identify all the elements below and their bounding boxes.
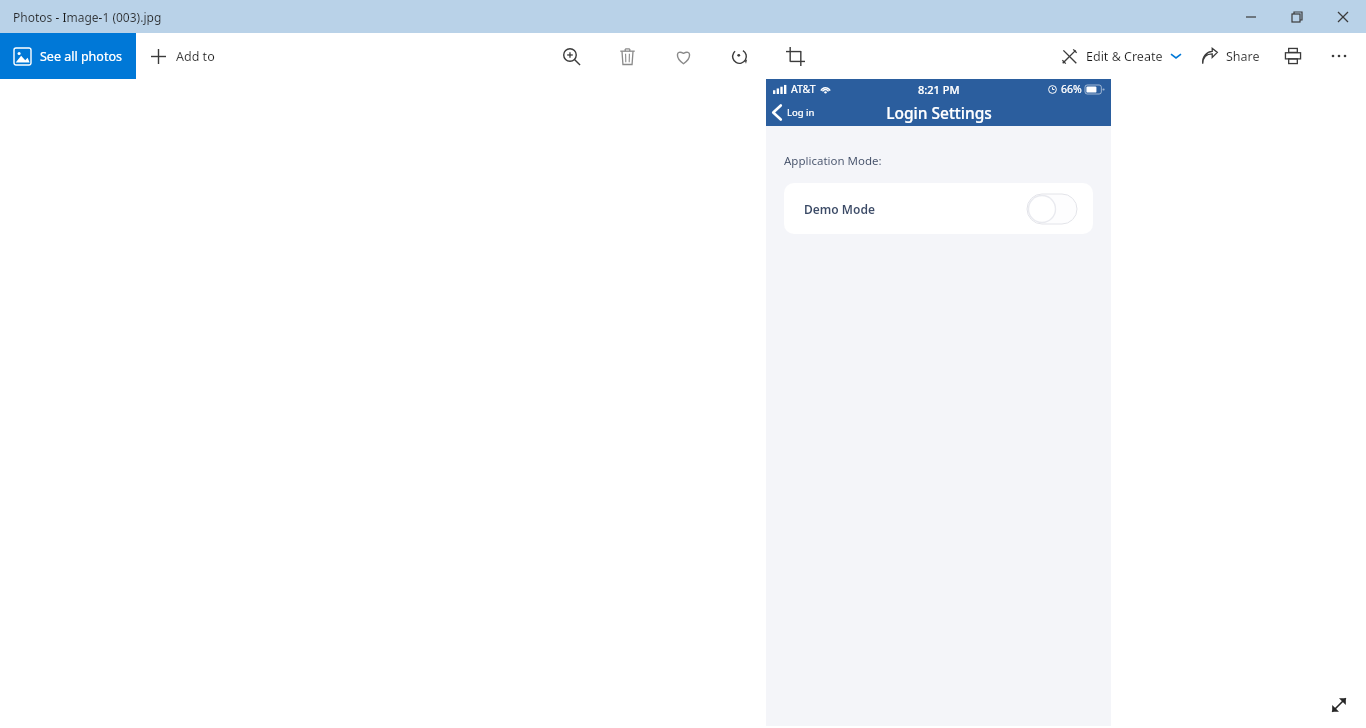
button[interactable]: Demo Mode	[784, 183, 1093, 234]
button[interactable]: Add to	[136, 33, 229, 79]
staticText: Log in	[787, 106, 815, 119]
staticText: 66%	[1061, 82, 1082, 96]
staticText: Login Settings	[886, 102, 992, 123]
button[interactable]: Zoom	[551, 36, 591, 76]
button[interactable]: Share	[1191, 33, 1270, 79]
button[interactable]: Demo Mode toggle, off	[1027, 194, 1077, 224]
button[interactable]: Edit & Create	[1051, 33, 1191, 79]
staticText: Edit & Create	[1086, 48, 1163, 65]
button[interactable]: Delete	[607, 36, 647, 76]
staticText: Add to	[176, 48, 215, 65]
staticText: See all photos	[40, 48, 122, 65]
button[interactable]: Close	[1320, 0, 1366, 33]
staticText: Share	[1226, 48, 1260, 65]
button[interactable]: Print	[1270, 33, 1316, 79]
staticText: Demo Mode	[804, 201, 875, 217]
staticText: 8:21 PM	[918, 82, 960, 97]
button[interactable]: Crop	[775, 36, 815, 76]
button[interactable]: Rotate	[719, 36, 759, 76]
button[interactable]: See all photos	[0, 33, 136, 79]
staticText: AT&T	[791, 82, 816, 96]
button[interactable]: More options	[1316, 33, 1362, 79]
button[interactable]: Log in	[766, 99, 823, 126]
staticText: Application Mode:	[784, 153, 882, 169]
staticText: Photos - Image-1 (003).jpg	[13, 9, 162, 25]
button[interactable]: Restore	[1274, 0, 1320, 33]
button[interactable]: Minimize	[1228, 0, 1274, 33]
button[interactable]: Fullscreen	[1322, 688, 1356, 722]
button[interactable]: Favorite	[663, 36, 703, 76]
